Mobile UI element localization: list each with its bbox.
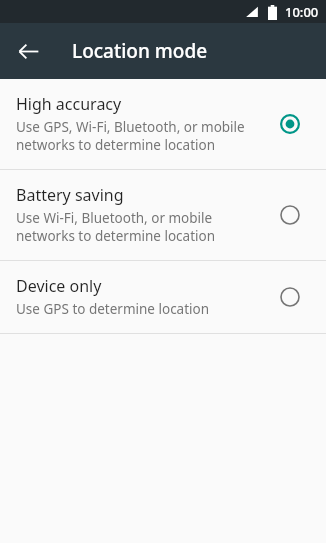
staticText: Use GPS, Wi-Fi, Bluetooth, or mobile net… [16,118,245,154]
staticText: High accuracy [16,93,122,115]
button[interactable]: Back [8,31,48,71]
staticText: Use Wi-Fi, Bluetooth, or mobile networks… [16,209,216,245]
staticText: Use GPS to determine location [16,300,210,318]
staticText: Battery saving [16,184,124,206]
button[interactable]: Device only [0,261,326,333]
button[interactable]: High accuracy [0,79,326,169]
staticText: Device only [16,275,102,297]
button[interactable]: Battery saving [0,170,326,260]
staticText: Location mode [72,38,208,64]
staticText: 10:00 [285,3,319,21]
